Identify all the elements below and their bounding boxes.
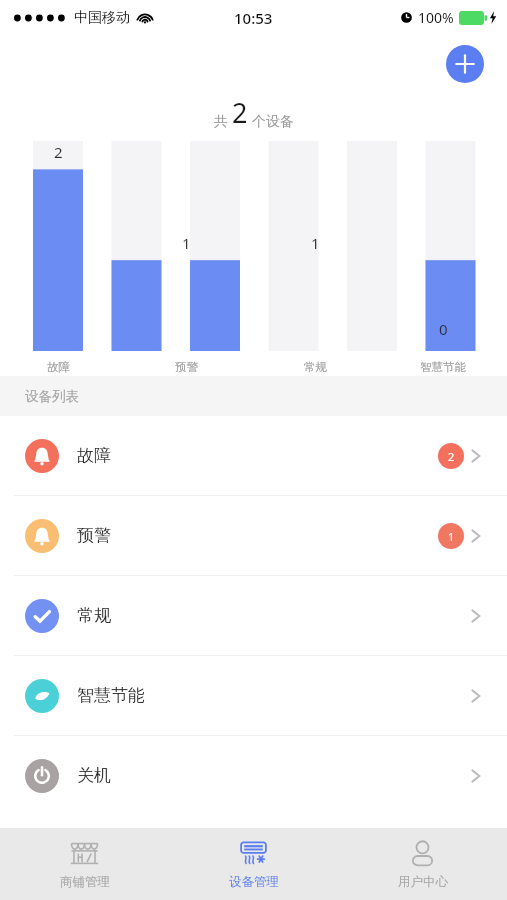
staticText: 2	[54, 142, 63, 162]
staticText: 共	[214, 113, 228, 131]
staticText: 故障	[77, 445, 111, 466]
staticText: 1	[182, 233, 191, 253]
button[interactable]: 用户中心	[338, 828, 507, 900]
staticText: 常规	[304, 360, 327, 374]
staticText: 预警	[77, 525, 111, 546]
staticText: 2	[448, 449, 455, 464]
button[interactable]: 常规	[0, 576, 507, 655]
staticText: 1	[448, 529, 455, 544]
button[interactable]: 预警	[0, 496, 507, 575]
staticText: 故障	[47, 360, 70, 374]
staticText: 设备列表	[25, 388, 79, 405]
button[interactable]: 商铺管理	[0, 828, 169, 900]
staticText: 智慧节能	[77, 685, 145, 706]
staticText: 10:53	[234, 8, 273, 28]
button[interactable]: 智慧节能	[0, 656, 507, 735]
staticText: 个设备	[252, 113, 294, 131]
button[interactable]: 关机	[0, 736, 507, 815]
staticText: 设备管理	[229, 874, 279, 890]
staticText: 预警	[175, 360, 198, 374]
staticText: 2	[232, 94, 248, 131]
staticText: 100%	[418, 8, 454, 27]
button[interactable]: 设备管理	[169, 828, 338, 900]
staticText: 关机	[77, 765, 111, 786]
staticText: 商铺管理	[60, 874, 110, 890]
button[interactable]: Add device	[446, 45, 484, 83]
staticText: 0	[439, 319, 448, 339]
staticText: 智慧节能	[420, 360, 466, 374]
staticText: 1	[311, 233, 320, 253]
button[interactable]: 故障	[0, 416, 507, 495]
staticText: 用户中心	[398, 874, 448, 890]
staticText: 中国移动	[74, 9, 130, 27]
staticText: 常规	[77, 605, 111, 626]
